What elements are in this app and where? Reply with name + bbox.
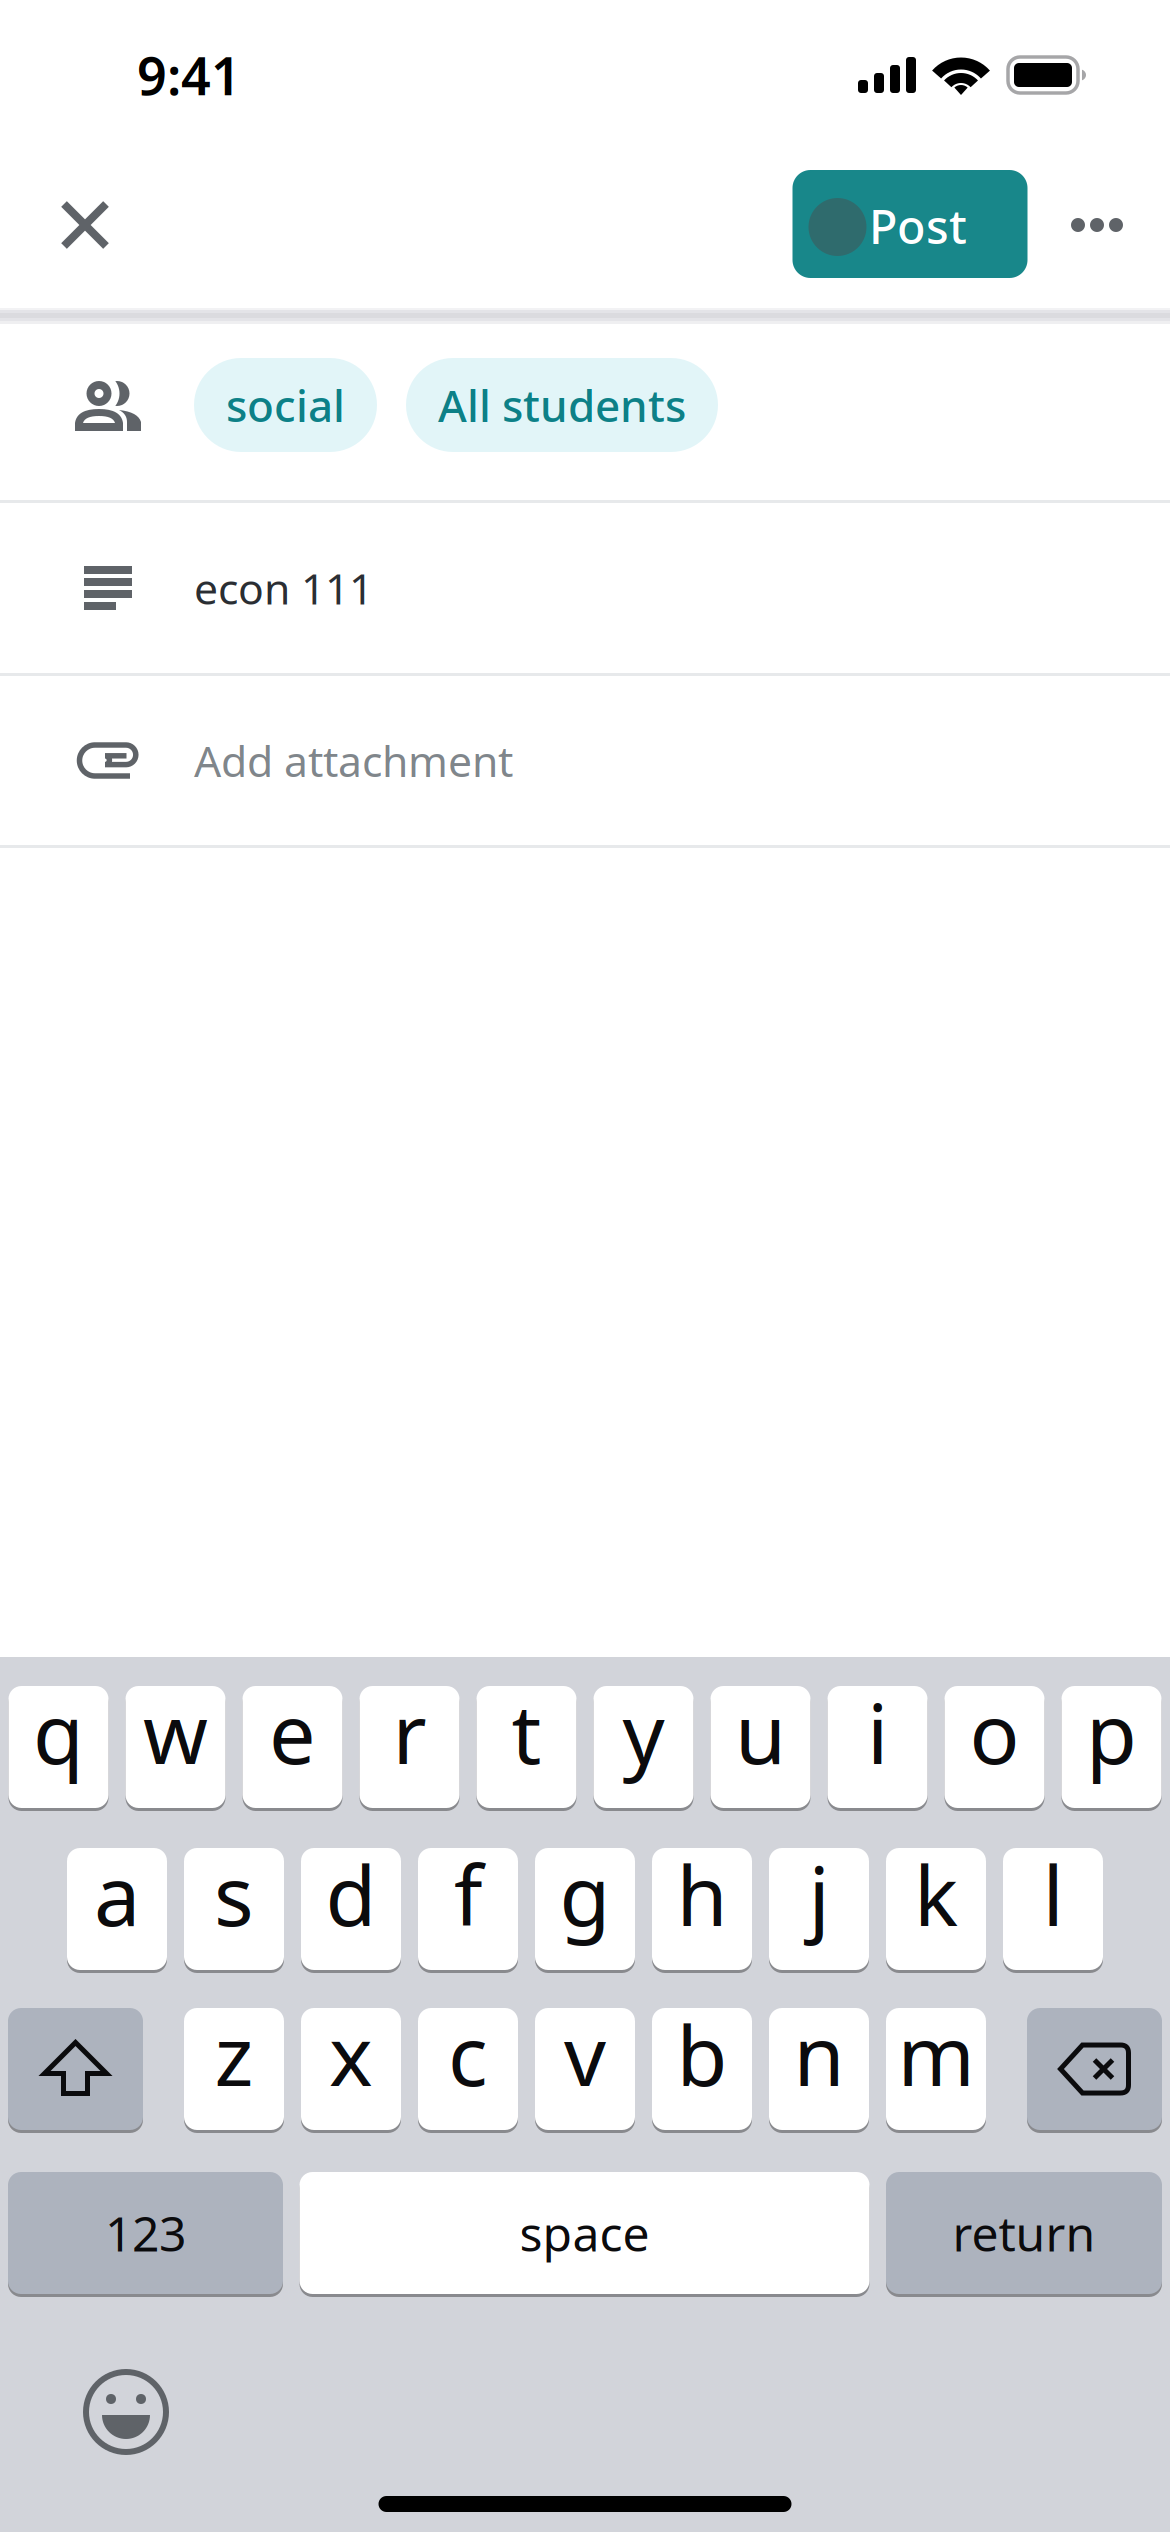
staticText: 123 — [105, 2201, 186, 2265]
staticText: a — [94, 1839, 140, 1949]
staticText: econ 111 — [194, 560, 373, 616]
button[interactable]: q — [8, 1686, 108, 1808]
button[interactable]: l — [1003, 1848, 1103, 1970]
staticText: j — [808, 1839, 829, 1949]
staticText: e — [269, 1677, 316, 1787]
staticText: k — [914, 1839, 958, 1949]
button[interactable]: m — [886, 2008, 986, 2130]
button[interactable]: social — [0, 324, 1170, 500]
button[interactable]: w — [125, 1686, 225, 1808]
staticText: y — [622, 1677, 664, 1787]
button[interactable]: t — [476, 1686, 576, 1808]
button[interactable]: c — [418, 2008, 518, 2130]
button[interactable]: social — [194, 358, 377, 452]
staticText: Add attachment — [194, 732, 513, 789]
staticText: w — [143, 1677, 208, 1787]
staticText: d — [325, 1839, 376, 1949]
button[interactable]: y — [593, 1686, 693, 1808]
button[interactable]: o — [944, 1686, 1044, 1808]
button[interactable]: return — [886, 2172, 1162, 2294]
staticText: o — [969, 1677, 1019, 1787]
staticText: c — [448, 1999, 488, 2109]
staticText: All students — [438, 376, 686, 434]
staticText: p — [1086, 1677, 1137, 1787]
staticText: q — [33, 1677, 84, 1787]
button[interactable]: h — [652, 1848, 752, 1970]
staticText: i — [867, 1677, 888, 1787]
button[interactable]: All students — [406, 358, 718, 452]
button[interactable]: g — [535, 1848, 635, 1970]
staticText: u — [735, 1677, 786, 1787]
button[interactable]: u — [710, 1686, 810, 1808]
button[interactable]: Emoji — [84, 2370, 168, 2454]
button[interactable]: j — [769, 1848, 869, 1970]
staticText: l — [1042, 1839, 1063, 1949]
button[interactable]: Shift — [8, 2008, 143, 2130]
staticText: b — [676, 1999, 727, 2109]
button[interactable]: n — [769, 2008, 869, 2130]
staticText: social — [226, 376, 345, 434]
button[interactable]: space — [299, 2172, 869, 2294]
button[interactable]: a — [67, 1848, 167, 1970]
staticText: v — [564, 1999, 606, 2109]
staticText: s — [214, 1839, 254, 1949]
staticText: t — [511, 1677, 541, 1787]
button[interactable]: econ 111 — [0, 503, 1170, 673]
button[interactable]: v — [535, 2008, 635, 2130]
button[interactable]: Post — [792, 170, 1027, 278]
button[interactable]: e — [242, 1686, 342, 1808]
button[interactable]: i — [827, 1686, 927, 1808]
button[interactable]: s — [184, 1848, 284, 1970]
button[interactable]: f — [418, 1848, 518, 1970]
button[interactable]: 123 — [8, 2172, 283, 2294]
staticText: h — [676, 1839, 727, 1949]
staticText: m — [897, 1999, 974, 2109]
button[interactable]: b — [652, 2008, 752, 2130]
button[interactable]: r — [359, 1686, 459, 1808]
staticText: return — [952, 2201, 1095, 2265]
staticText: 9:41 — [137, 40, 241, 110]
button[interactable]: p — [1061, 1686, 1161, 1808]
button[interactable]: Close — [40, 180, 130, 270]
button[interactable]: x — [301, 2008, 401, 2130]
button[interactable]: d — [301, 1848, 401, 1970]
button[interactable]: More options — [1052, 180, 1142, 270]
staticText: space — [519, 2201, 649, 2265]
button[interactable]: Delete — [1027, 2008, 1162, 2130]
staticText: f — [454, 1839, 482, 1949]
button[interactable]: Add attachment — [0, 676, 1170, 845]
staticText: x — [329, 1999, 373, 2109]
button[interactable]: z — [184, 2008, 284, 2130]
staticText: g — [559, 1839, 610, 1949]
staticText: z — [214, 1999, 253, 2109]
button[interactable]: k — [886, 1848, 986, 1970]
staticText: n — [793, 1999, 844, 2109]
staticText: Post — [869, 195, 967, 257]
staticText: r — [392, 1677, 426, 1787]
